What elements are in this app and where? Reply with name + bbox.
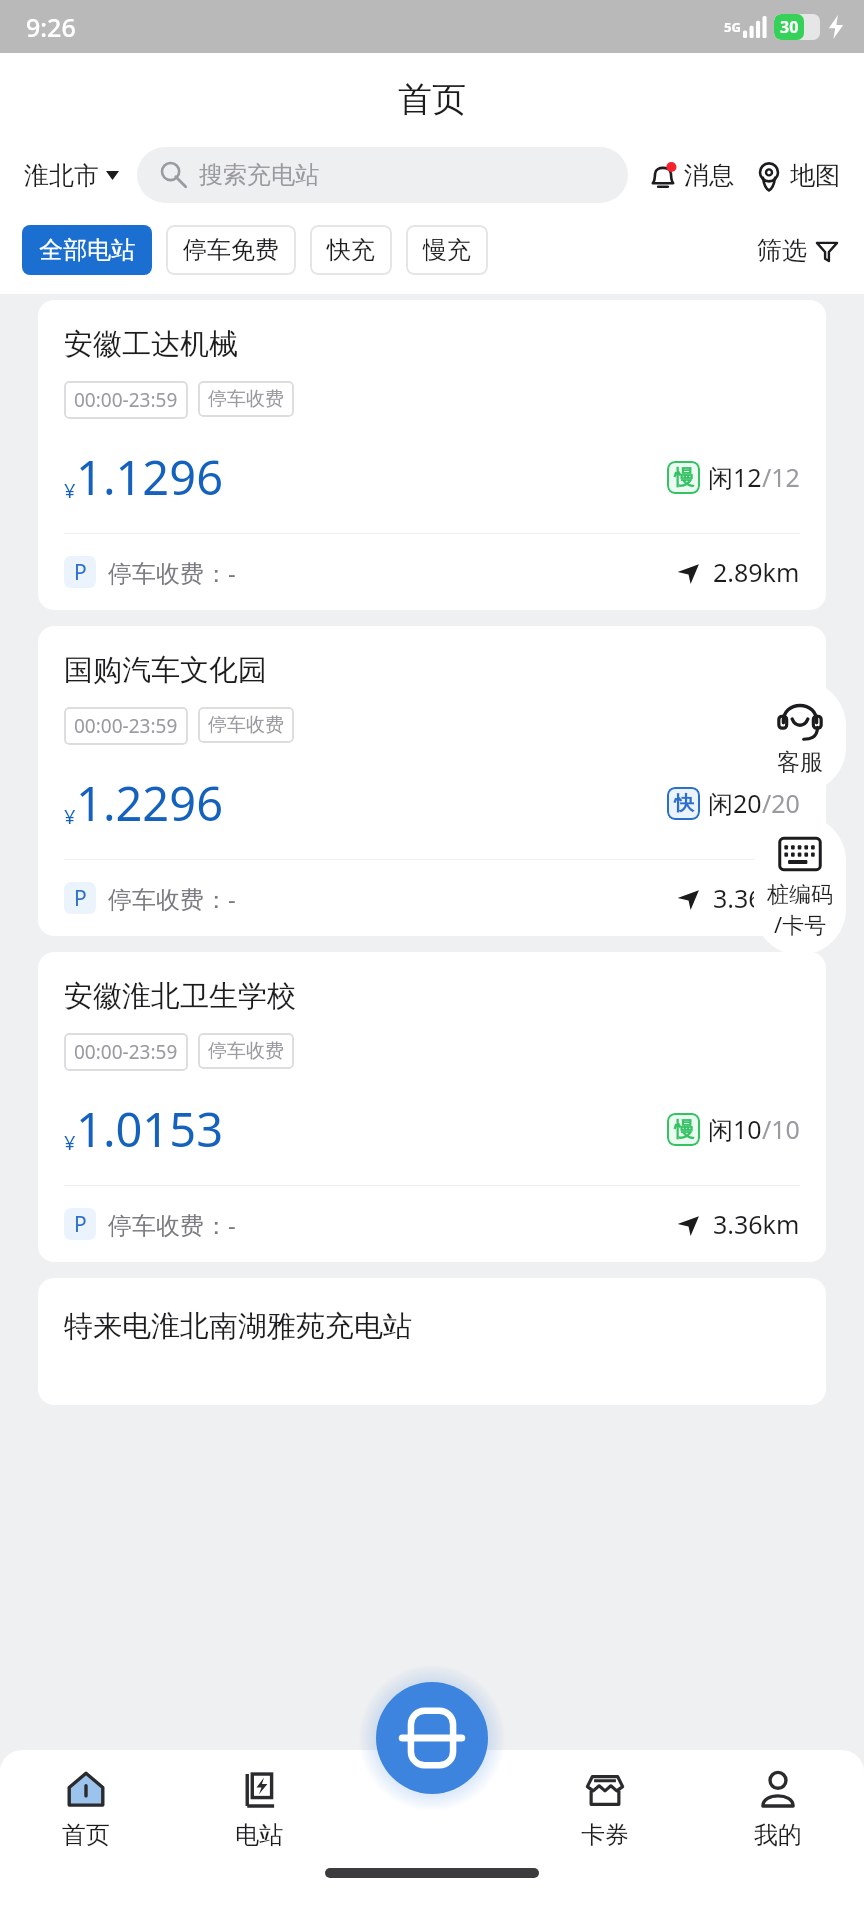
- other: 导航: [675, 885, 701, 911]
- staticText: 2.89km: [713, 555, 800, 589]
- staticText: 1.2296: [76, 771, 224, 835]
- other: 地图: [754, 161, 784, 191]
- staticText: 1.1296: [76, 445, 224, 509]
- button[interactable]: 停车免费: [166, 225, 296, 275]
- button[interactable]: 桩编码/卡号: [754, 815, 846, 955]
- other: 桩编码/卡号: [777, 831, 823, 877]
- staticText: 桩编码: [767, 881, 833, 909]
- staticText: 3.36km: [713, 881, 800, 915]
- staticText: 特来电淮北南湖雅苑充电站: [64, 1308, 412, 1345]
- staticText: ¥: [64, 803, 76, 830]
- staticText: 国购汽车文化园: [64, 652, 267, 689]
- button[interactable]: 筛选: [754, 232, 842, 269]
- staticText: 我的: [754, 1820, 802, 1850]
- staticText: 全部电站: [39, 235, 135, 265]
- staticText: 停车收费: [208, 1039, 284, 1063]
- staticText: 00:00-23:59: [74, 1039, 178, 1065]
- staticText: 筛选: [757, 235, 807, 266]
- button[interactable]: 慢充: [406, 225, 488, 275]
- button[interactable]: 电站: [172, 1750, 345, 1868]
- staticText: 闲20: [708, 786, 762, 820]
- staticText: 停车收费：-: [108, 1208, 236, 1241]
- staticText: 快充: [327, 235, 375, 265]
- staticText: /卡号: [774, 909, 827, 939]
- staticText: 停车收费: [208, 387, 284, 411]
- staticText: /12: [762, 460, 800, 494]
- staticText: 9:26: [26, 10, 76, 44]
- button[interactable]: 快充: [310, 225, 392, 275]
- staticText: 停车收费：-: [108, 556, 236, 589]
- button[interactable]: 卡券: [518, 1750, 691, 1868]
- other: 筛选: [815, 239, 839, 263]
- staticText: 安徽淮北卫生学校: [64, 978, 296, 1015]
- staticText: 闲12: [708, 460, 762, 494]
- staticText: 慢: [674, 465, 694, 490]
- button[interactable]: 搜索充电站: [137, 147, 628, 203]
- staticText: 停车收费: [208, 713, 284, 737]
- staticText: 消息: [684, 160, 734, 191]
- staticText: 电站: [235, 1820, 283, 1850]
- button[interactable]: 安徽工达机械: [38, 300, 826, 610]
- staticText: 地图: [790, 160, 840, 191]
- staticText: 搜索充电站: [199, 160, 319, 190]
- button[interactable]: 消息: [646, 158, 736, 193]
- staticText: 停车收费：-: [108, 882, 236, 915]
- button[interactable]: 首页: [0, 1750, 172, 1868]
- staticText: 00:00-23:59: [74, 387, 178, 413]
- staticText: 停车免费: [183, 235, 279, 265]
- staticText: 慢充: [423, 235, 471, 265]
- button[interactable]: 扫一扫: [376, 1682, 488, 1794]
- button[interactable]: 我的: [691, 1750, 864, 1868]
- button[interactable]: 地图: [752, 158, 842, 193]
- staticText: 快: [674, 791, 694, 816]
- other: 导航: [675, 559, 701, 585]
- staticText: P: [74, 1210, 87, 1239]
- staticText: 闲10: [708, 1112, 762, 1146]
- staticText: 5G: [724, 18, 741, 36]
- other: 客服: [777, 696, 823, 742]
- staticText: ¥: [64, 477, 76, 504]
- staticText: 客服: [777, 748, 823, 777]
- staticText: 淮北市: [24, 160, 99, 191]
- staticText: 慢: [674, 1117, 694, 1142]
- button[interactable]: 安徽淮北卫生学校: [38, 952, 826, 1262]
- staticText: 首页: [398, 78, 466, 121]
- staticText: 3.36km: [713, 1207, 800, 1241]
- staticText: 安徽工达机械: [64, 326, 238, 363]
- staticText: 00:00-23:59: [74, 713, 178, 739]
- other: 导航: [675, 1211, 701, 1237]
- button[interactable]: 客服: [754, 680, 846, 793]
- staticText: 首页: [62, 1820, 110, 1850]
- staticText: /10: [762, 1112, 800, 1146]
- staticText: 30: [780, 16, 799, 38]
- staticText: P: [74, 884, 87, 913]
- button[interactable]: 国购汽车文化园: [38, 626, 826, 936]
- button[interactable]: 全部电站: [22, 225, 152, 275]
- button[interactable]: 淮北市: [22, 156, 121, 195]
- staticText: P: [74, 558, 87, 587]
- button[interactable]: 特来电淮北南湖雅苑充电站: [38, 1278, 826, 1405]
- staticText: 卡券: [581, 1820, 629, 1850]
- staticText: ¥: [64, 1129, 76, 1156]
- other: 消息: [648, 161, 678, 191]
- staticText: 1.0153: [76, 1097, 224, 1161]
- staticText: /20: [762, 786, 800, 820]
